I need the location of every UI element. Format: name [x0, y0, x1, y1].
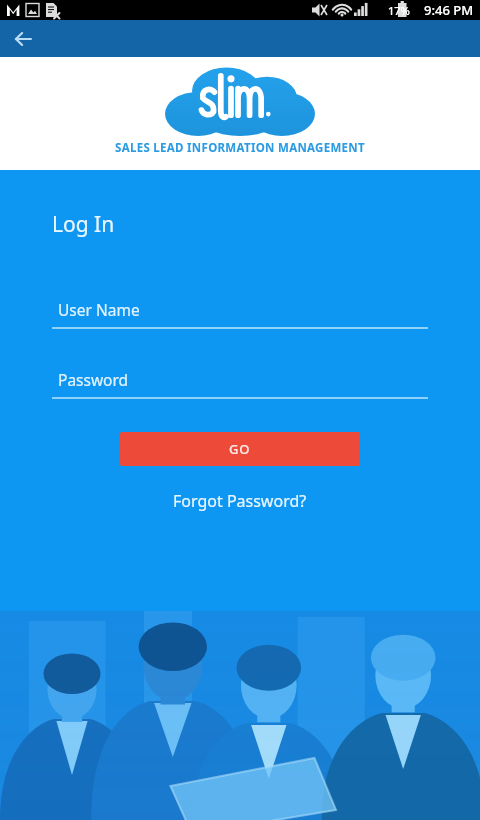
button[interactable]: Back	[6, 22, 40, 56]
staticText: User Name	[58, 299, 140, 320]
staticText: Forgot Password?	[173, 490, 307, 512]
staticText: 9:46 PM	[424, 1, 474, 19]
staticText: GO	[229, 440, 251, 458]
staticText: Log In	[52, 210, 115, 239]
staticText: Password	[58, 369, 129, 390]
button[interactable]: GO	[120, 432, 360, 466]
staticText: SALES LEAD INFORMATION MANAGEMENT	[115, 140, 365, 156]
button[interactable]: Password	[52, 367, 428, 399]
staticText: 17%	[388, 3, 410, 18]
button[interactable]: User Name	[52, 297, 428, 329]
button[interactable]: Forgot Password?	[161, 486, 319, 516]
